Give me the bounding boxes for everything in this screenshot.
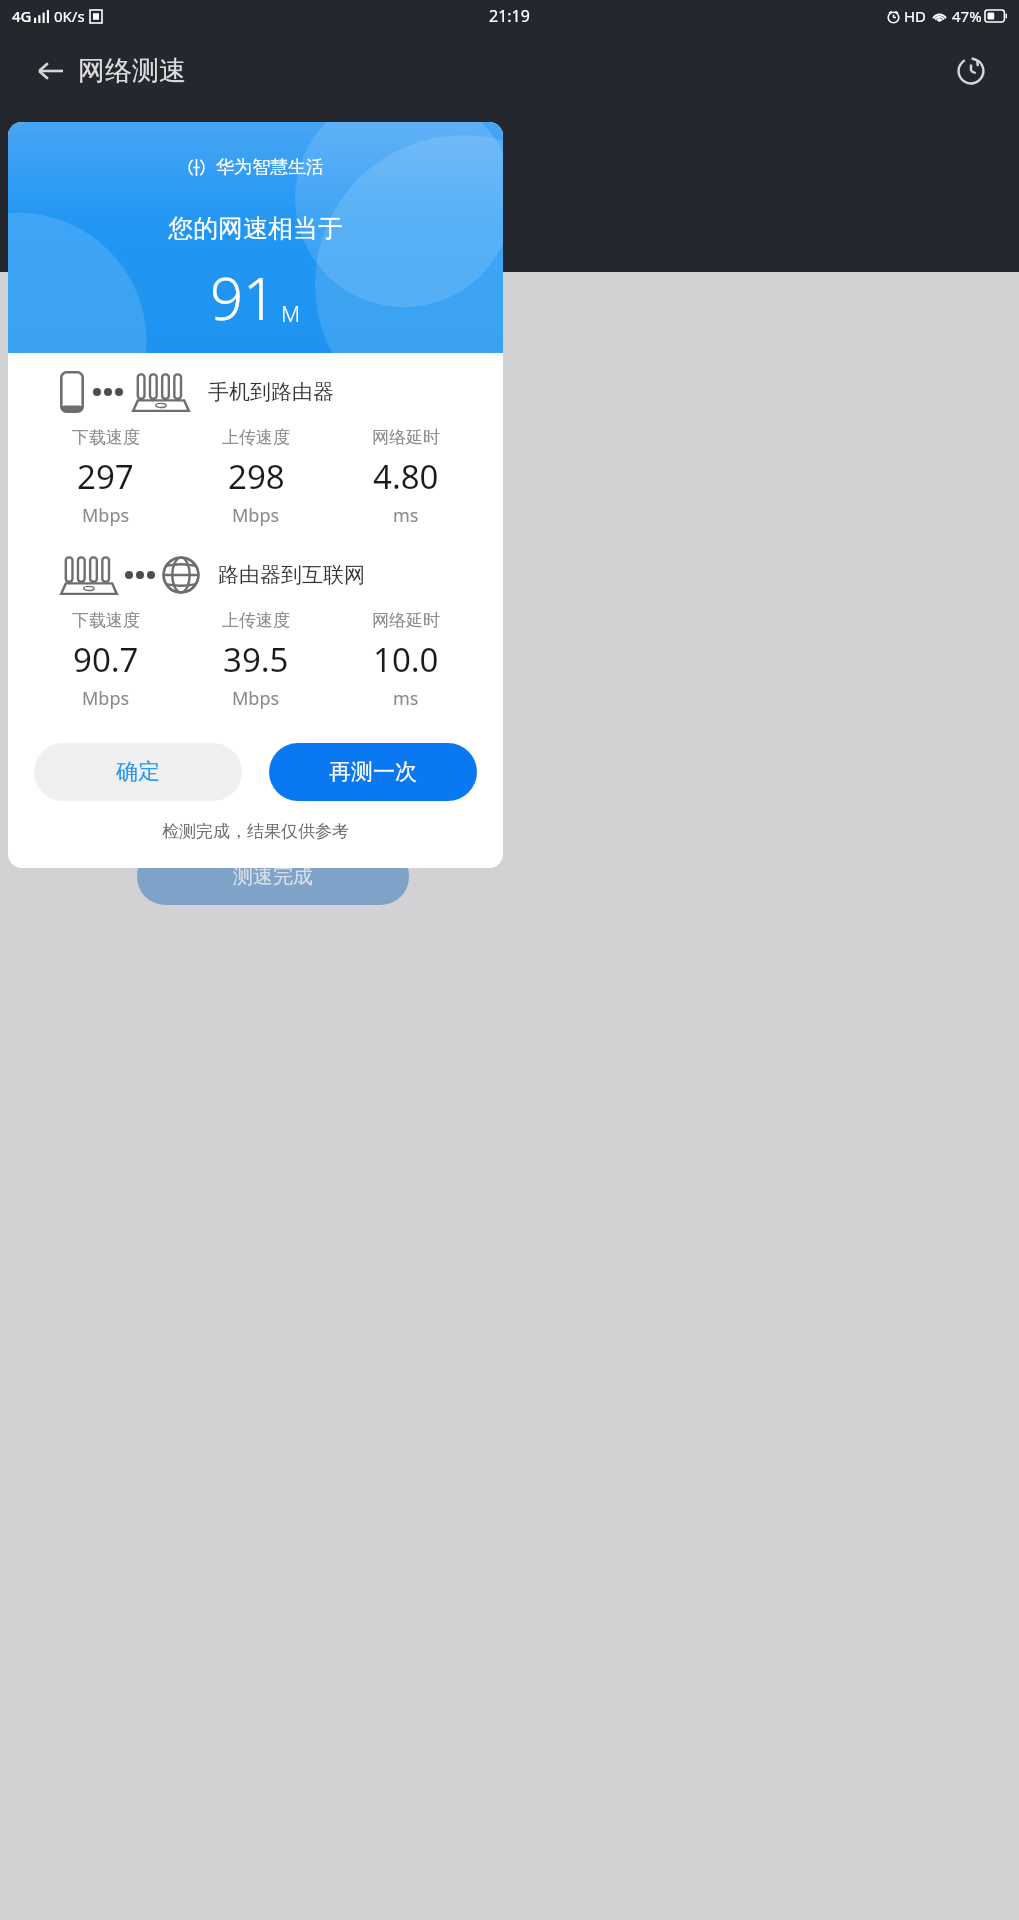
staticText: 测速完成	[233, 864, 313, 889]
staticText: Mbps	[82, 686, 130, 711]
staticText: Mbps	[232, 686, 280, 711]
staticText: 手机到路由器	[208, 379, 334, 405]
staticText: 网络延时	[372, 610, 440, 631]
staticText: 10.0	[373, 637, 439, 682]
staticText: 90.7	[73, 637, 139, 682]
staticText: 网络测速	[78, 54, 186, 88]
staticText: HD	[904, 6, 927, 26]
button[interactable]: Back	[24, 45, 76, 97]
staticText: 下载速度	[72, 610, 140, 631]
staticText: 下载速度	[72, 427, 140, 448]
staticText: 4G	[12, 6, 32, 26]
staticText: 298	[228, 454, 285, 499]
staticText: 再测一次	[329, 758, 417, 786]
staticText: 上传速度	[222, 427, 290, 448]
staticText: 您的网速相当于	[168, 213, 343, 244]
staticText: 路由器到互联网	[218, 562, 365, 588]
button[interactable]: History	[945, 45, 997, 97]
staticText: 4.80	[373, 454, 439, 499]
button[interactable]: 再测一次	[269, 743, 477, 801]
staticText: 0K/s	[54, 6, 85, 26]
staticText: M	[281, 298, 301, 328]
staticText: 91	[210, 258, 277, 337]
staticText: 21:19	[489, 5, 530, 27]
staticText: 华为智慧生活	[216, 156, 324, 179]
staticText: ms	[393, 686, 419, 711]
staticText: 47%	[952, 6, 982, 26]
staticText: Mbps	[82, 503, 130, 528]
staticText: Mbps	[232, 503, 280, 528]
button[interactable]: 测速完成	[137, 848, 409, 905]
staticText: 297	[77, 454, 134, 499]
staticText: 39.5	[223, 637, 289, 682]
staticText: 网络延时	[372, 427, 440, 448]
staticText: 确定	[116, 758, 160, 786]
staticText: ms	[393, 503, 419, 528]
staticText: 检测完成，结果仅供参考	[8, 821, 503, 842]
button[interactable]: 确定	[34, 743, 242, 801]
staticText: 上传速度	[222, 610, 290, 631]
